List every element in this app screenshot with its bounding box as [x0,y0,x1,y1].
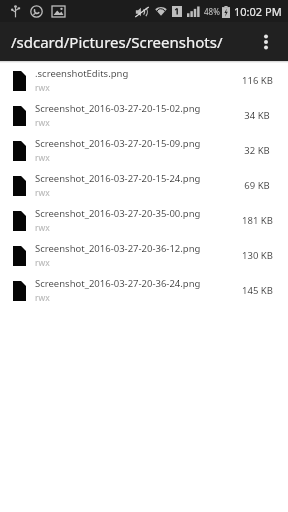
button[interactable]: More options [250,26,282,58]
staticText: rwx [35,187,50,199]
staticText: /sdcard/Pictures/Screenshots/ [11,32,223,52]
button[interactable]: Screenshot_2016-03-27-20-35-00.png [0,203,288,238]
staticText: Screenshot_2016-03-27-20-15-02.png [35,102,201,115]
staticText: Screenshot_2016-03-27-20-15-24.png [35,172,201,185]
staticText: 48% [204,6,220,17]
staticText: rwx [35,152,50,164]
staticText: rwx [35,82,50,94]
staticText: 32 KB [244,144,270,157]
staticText: rwx [35,117,50,129]
staticText: .screenshotEdits.png [35,67,129,80]
button[interactable]: Screenshot_2016-03-27-20-15-02.png [0,98,288,133]
button[interactable]: Screenshot_2016-03-27-20-15-09.png [0,133,288,168]
staticText: 130 KB [242,249,273,262]
staticText: Screenshot_2016-03-27-20-36-24.png [35,277,201,290]
staticText: 10:02 PM [234,4,282,19]
staticText: 145 KB [242,284,273,297]
staticText: Screenshot_2016-03-27-20-36-12.png [35,242,201,255]
staticText: 181 KB [242,214,273,227]
button[interactable]: Screenshot_2016-03-27-20-15-24.png [0,168,288,203]
button[interactable]: Screenshot_2016-03-27-20-36-12.png [0,238,288,273]
staticText: Screenshot_2016-03-27-20-15-09.png [35,137,201,150]
staticText: 69 KB [244,179,270,192]
staticText: rwx [35,257,50,269]
staticText: 34 KB [244,109,270,122]
staticText: rwx [35,222,50,234]
staticText: 116 KB [242,74,273,87]
staticText: Screenshot_2016-03-27-20-35-00.png [35,207,201,220]
button[interactable]: Screenshot_2016-03-27-20-36-24.png [0,273,288,308]
staticText: rwx [35,292,50,304]
button[interactable]: .screenshotEdits.png [0,63,288,98]
